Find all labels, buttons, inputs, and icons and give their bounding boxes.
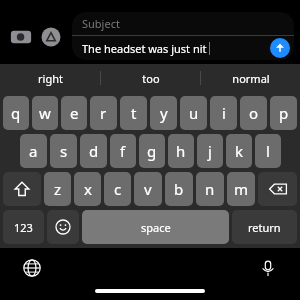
button[interactable]: 123	[3, 210, 44, 244]
button[interactable]: n	[196, 172, 224, 206]
staticText: a	[29, 141, 38, 161]
staticText: z	[54, 179, 62, 199]
button[interactable]: too	[101, 64, 200, 92]
staticText: p	[279, 103, 289, 123]
button[interactable]: d	[80, 134, 107, 168]
button[interactable]: Emoji	[47, 210, 79, 244]
staticText: v	[144, 179, 152, 199]
button[interactable]: l	[255, 134, 281, 168]
staticText: r	[100, 103, 107, 123]
button[interactable]: o	[240, 96, 267, 130]
button[interactable]: m	[227, 172, 255, 206]
button[interactable]: e	[61, 96, 87, 130]
staticText: s	[60, 141, 68, 161]
staticText: q	[11, 103, 21, 123]
staticText: u	[189, 103, 199, 123]
button[interactable]: w	[32, 96, 58, 130]
staticText: m	[234, 179, 249, 199]
button[interactable]: c	[104, 172, 131, 206]
button[interactable]: g	[139, 134, 165, 168]
staticText: normal	[232, 71, 270, 86]
staticText: b	[174, 179, 184, 199]
button[interactable]: x	[74, 172, 101, 206]
button[interactable]: k	[226, 134, 252, 168]
staticText: c	[114, 179, 122, 199]
button[interactable]: s	[50, 134, 77, 168]
button[interactable]: b	[165, 172, 193, 206]
button[interactable]: t	[120, 96, 147, 130]
staticText: t	[131, 103, 137, 123]
staticText: l	[266, 141, 270, 161]
staticText: The headset was just nit	[82, 41, 207, 56]
button[interactable]: v	[134, 172, 162, 206]
button[interactable]: j	[197, 134, 223, 168]
button[interactable]: Change keyboard	[18, 254, 46, 282]
staticText: space	[141, 220, 171, 235]
staticText: too	[142, 71, 160, 86]
staticText: x	[84, 179, 92, 199]
button[interactable]: a	[20, 134, 47, 168]
staticText: right	[38, 71, 63, 86]
button[interactable]: f	[110, 134, 136, 168]
button[interactable]: Backspace	[258, 172, 297, 206]
button[interactable]: h	[168, 134, 194, 168]
staticText: w	[39, 103, 51, 123]
staticText: h	[176, 141, 186, 161]
staticText: Subject	[82, 16, 120, 31]
button[interactable]: Apps	[36, 22, 66, 52]
button[interactable]: y	[150, 96, 177, 130]
staticText: e	[70, 103, 79, 123]
button[interactable]: u	[180, 96, 207, 130]
staticText: g	[147, 141, 157, 161]
button[interactable]: right	[0, 64, 100, 92]
button[interactable]: space	[82, 210, 229, 244]
staticText: o	[249, 103, 259, 123]
staticText: 123	[14, 220, 33, 235]
button[interactable]: q	[3, 96, 29, 130]
button[interactable]: r	[90, 96, 117, 130]
staticText: n	[205, 179, 215, 199]
staticText: j	[208, 141, 212, 161]
staticText: f	[120, 141, 126, 161]
button[interactable]: Send	[270, 38, 290, 58]
staticText: d	[89, 141, 99, 161]
button[interactable]: normal	[201, 64, 300, 92]
button[interactable]: Dictation	[254, 254, 282, 282]
button[interactable]: i	[210, 96, 237, 130]
staticText: k	[235, 141, 244, 161]
button[interactable]: z	[44, 172, 71, 206]
button[interactable]: p	[270, 96, 297, 130]
button[interactable]: Camera	[6, 22, 36, 52]
button[interactable]: Shift	[3, 172, 41, 206]
staticText: y	[160, 103, 168, 123]
button[interactable]: return	[232, 210, 297, 244]
staticText: return	[248, 220, 281, 235]
staticText: i	[222, 103, 226, 123]
